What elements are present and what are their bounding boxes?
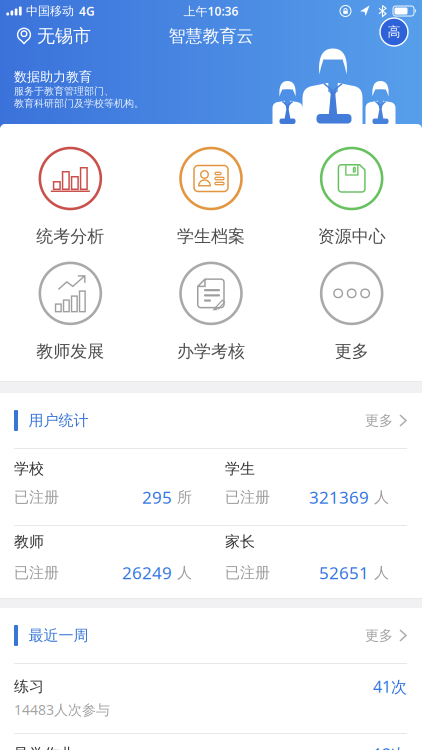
staticText: 4G (79, 3, 95, 19)
staticText: 所 (177, 488, 192, 506)
button[interactable]: 学生档案 (177, 148, 245, 247)
staticText: 已注册 (14, 563, 59, 582)
button[interactable]: 更多 (321, 263, 382, 362)
staticText: 295 (142, 486, 172, 508)
staticText: 导学作业 (14, 745, 74, 750)
staticText: 人 (374, 488, 389, 506)
staticText: 12次 (373, 743, 407, 750)
staticText: 智慧教育云 (168, 26, 253, 46)
staticText: 资源中心 (318, 226, 386, 247)
staticText: 高 (387, 24, 400, 40)
staticText: 学生 (225, 459, 255, 478)
button[interactable]: 统考分析 (36, 148, 104, 247)
staticText: 41次 (373, 676, 407, 697)
staticText: 服务于教育管理部门、 (14, 85, 114, 97)
staticText: 教育科研部门及学校等机构。 (14, 97, 144, 110)
staticText: 上午10:36 (183, 3, 238, 19)
button[interactable]: 教师 (0, 526, 211, 598)
button[interactable]: 导学作业 (0, 734, 422, 750)
staticText: 教师 (14, 532, 44, 551)
staticText: 已注册 (14, 488, 59, 506)
staticText: 已注册 (225, 563, 270, 582)
staticText: 最近一周 (28, 626, 88, 645)
staticText: 更多 (365, 627, 393, 644)
button[interactable]: 练习 (0, 664, 422, 733)
staticText: 更多 (365, 412, 393, 429)
staticText: 52651 (319, 561, 369, 584)
staticText: 练习 (14, 677, 44, 696)
button[interactable]: 更多 (365, 412, 407, 429)
staticText: 更多 (335, 341, 369, 362)
button[interactable]: 家长 (211, 526, 422, 598)
button[interactable]: 无锡市 (0, 25, 91, 47)
staticText: 学校 (14, 459, 44, 478)
staticText: 统考分析 (36, 226, 104, 247)
staticText: 数据助力教育 (14, 69, 92, 85)
staticText: 中国移动 (26, 4, 74, 18)
button[interactable]: 资源中心 (318, 148, 386, 247)
button[interactable]: 办学考核 (177, 263, 245, 362)
staticText: 已注册 (225, 488, 270, 506)
staticText: 用户统计 (28, 411, 88, 430)
button[interactable]: 个人中心 (380, 18, 422, 54)
staticText: 人 (177, 563, 192, 582)
button[interactable]: 学校 (0, 449, 211, 525)
staticText: 教师发展 (36, 341, 104, 362)
button[interactable]: 更多 (365, 627, 407, 644)
button[interactable]: 教师发展 (36, 263, 104, 362)
staticText: 人 (374, 563, 389, 582)
staticText: 26249 (122, 561, 172, 584)
staticText: 321369 (309, 486, 369, 508)
button[interactable]: 学生 (211, 449, 422, 525)
staticText: 学生档案 (177, 226, 245, 247)
staticText: 无锡市 (37, 25, 91, 47)
staticText: 14483人次参与 (14, 700, 110, 719)
staticText: 办学考核 (177, 341, 245, 362)
staticText: 家长 (225, 532, 255, 551)
